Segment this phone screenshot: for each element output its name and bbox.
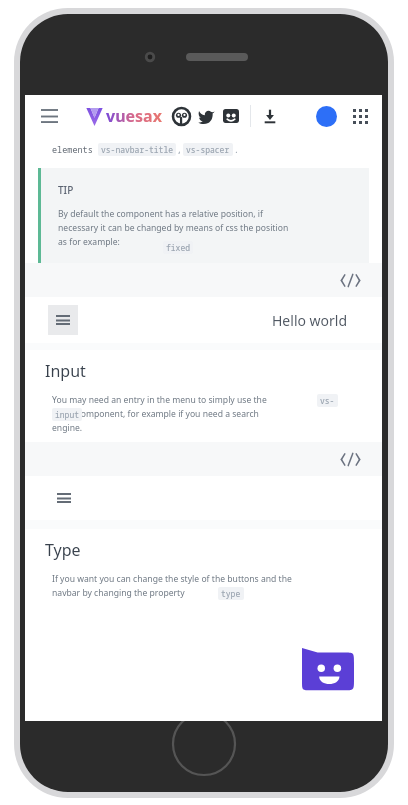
staticText: elements	[52, 144, 93, 156]
button[interactable]: Download	[259, 105, 281, 127]
button[interactable]: Apps	[347, 103, 373, 129]
button[interactable]: Menu	[34, 101, 64, 131]
staticText: vs-	[320, 395, 335, 406]
staticText: .	[233, 144, 238, 156]
staticText: vuesax	[106, 105, 162, 127]
button[interactable]: Show code	[25, 263, 382, 297]
staticText: fixed	[166, 242, 190, 253]
button[interactable]: Chat support	[302, 648, 354, 694]
staticText: vs-navbar-title	[101, 144, 173, 155]
staticText: TIP	[58, 183, 74, 197]
staticText: Input	[45, 360, 86, 382]
button[interactable]	[48, 483, 359, 513]
button[interactable]: Vuesax home	[86, 105, 162, 127]
staticText: type	[221, 588, 241, 599]
button[interactable]: Discord	[220, 105, 242, 127]
staticText: Hello world	[272, 311, 348, 330]
staticText: input	[55, 409, 79, 420]
staticText: If you want you can change the style of …	[52, 573, 292, 599]
button[interactable]: Theme color	[313, 103, 339, 129]
staticText: Type	[45, 539, 81, 561]
button[interactable]: Hello world	[48, 303, 359, 337]
button[interactable]: GitHub	[170, 105, 192, 127]
staticText: You may need an entry in the menu to sim…	[52, 394, 267, 434]
button[interactable]: Twitter	[195, 105, 217, 127]
button[interactable]: Show code	[25, 442, 382, 476]
staticText: vs-spacer	[186, 144, 230, 155]
staticText: ,	[176, 144, 183, 156]
staticText: By default the component has a relative …	[58, 208, 289, 248]
